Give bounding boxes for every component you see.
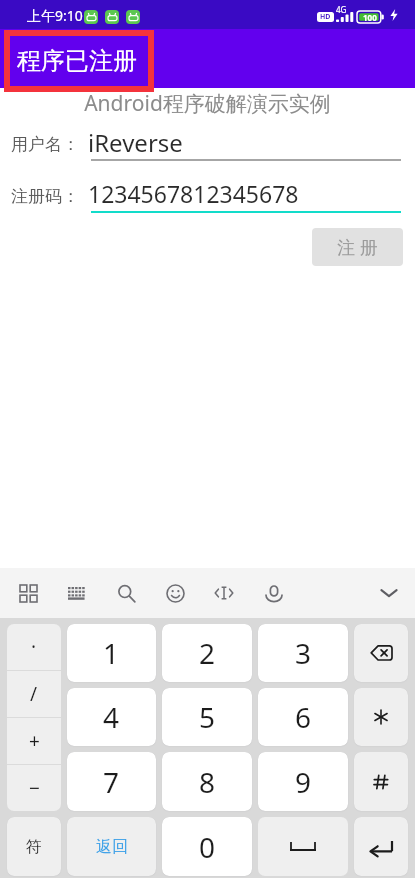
button[interactable]: Space — [258, 817, 348, 876]
staticText: 4 — [103, 698, 120, 736]
button[interactable]: 1 — [67, 624, 156, 682]
button[interactable]: Keyboard layout — [56, 572, 98, 614]
staticText: 9 — [295, 763, 312, 801]
button[interactable]: 2 — [162, 624, 252, 682]
button[interactable]: Backspace — [354, 624, 408, 682]
staticText: 1 — [103, 634, 120, 672]
staticText: 7 — [103, 763, 120, 801]
button[interactable]: Emoji — [154, 572, 196, 614]
staticText: 程序已注册 — [17, 46, 137, 76]
staticText: 用户名： — [11, 134, 79, 155]
button[interactable]: Hide keyboard — [368, 572, 410, 614]
button[interactable]: Move cursor — [203, 572, 245, 614]
button[interactable]: − — [7, 765, 61, 811]
button[interactable]: 5 — [162, 688, 252, 746]
staticText: Android程序破解演示实例 — [0, 89, 415, 118]
button[interactable]: 返回 — [67, 817, 156, 876]
button[interactable]: 3 — [258, 624, 348, 682]
button[interactable]: Asterisk — [354, 688, 408, 746]
staticText: 4G — [336, 4, 347, 15]
staticText: · — [31, 634, 37, 660]
staticText: 6 — [295, 698, 312, 736]
button[interactable]: Apps — [7, 572, 49, 614]
staticText: − — [29, 775, 40, 801]
staticText: 0 — [199, 828, 216, 866]
staticText: 3 — [295, 634, 312, 672]
button[interactable]: Voice input — [253, 572, 295, 614]
staticText: + — [29, 728, 40, 754]
button[interactable]: 9 — [258, 752, 348, 811]
staticText: 注册码： — [11, 186, 79, 207]
staticText: HD — [320, 12, 331, 22]
button[interactable]: 7 — [67, 752, 156, 811]
staticText: iReverse — [88, 126, 183, 159]
button[interactable]: Search — [105, 572, 147, 614]
staticText: 1234567812345678 — [88, 178, 299, 209]
staticText: 返回 — [96, 837, 128, 857]
button[interactable]: Enter — [354, 817, 408, 876]
staticText: / — [30, 681, 38, 707]
button[interactable]: 0 — [162, 817, 252, 876]
button[interactable]: Hash — [354, 752, 408, 811]
button[interactable]: 符 — [7, 817, 61, 876]
button[interactable]: 6 — [258, 688, 348, 746]
staticText: 上午9:10 — [27, 6, 83, 25]
staticText: 符 — [26, 837, 42, 857]
button[interactable]: 注 册 — [312, 228, 403, 266]
staticText: 8 — [199, 763, 216, 801]
staticText: 5 — [199, 698, 216, 736]
button[interactable]: · — [7, 624, 61, 670]
button[interactable]: + — [7, 718, 61, 764]
staticText: 注 册 — [337, 235, 378, 260]
staticText: 2 — [199, 634, 216, 672]
button[interactable]: 8 — [162, 752, 252, 811]
staticText: 100 — [363, 12, 377, 23]
button[interactable]: / — [7, 671, 61, 717]
button[interactable]: 4 — [67, 688, 156, 746]
